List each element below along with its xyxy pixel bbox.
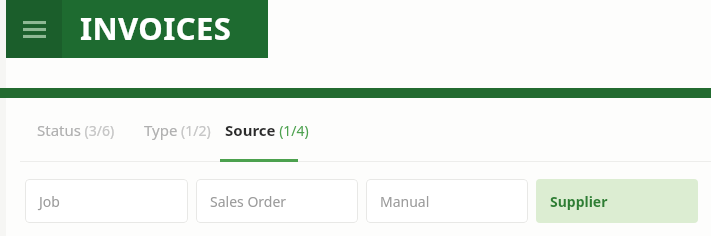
button[interactable]: Manual bbox=[366, 179, 528, 223]
button[interactable]: Type (1/2) bbox=[132, 98, 222, 162]
button[interactable]: Supplier bbox=[536, 179, 698, 223]
staticText: Type (1/2) bbox=[144, 120, 211, 140]
staticText: Sales Order bbox=[210, 192, 287, 211]
button[interactable]: Source (1/4) bbox=[222, 98, 312, 162]
staticText: Supplier bbox=[550, 192, 608, 211]
button[interactable]: Open navigation menu bbox=[6, 0, 62, 58]
staticText: Job bbox=[39, 192, 60, 211]
staticText: Status (3/6) bbox=[37, 120, 115, 140]
staticText: Manual bbox=[380, 192, 430, 211]
button[interactable]: Job bbox=[25, 179, 188, 223]
staticText: INVOICES bbox=[80, 7, 232, 49]
staticText: Source (1/4) bbox=[225, 120, 309, 140]
button[interactable]: Status (3/6) bbox=[20, 98, 132, 162]
button[interactable]: Sales Order bbox=[196, 179, 358, 223]
